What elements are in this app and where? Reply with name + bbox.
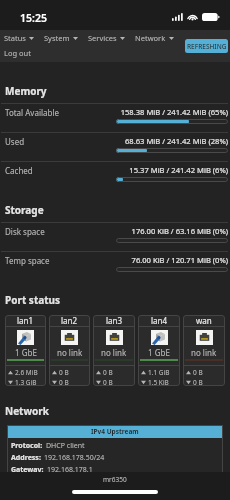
button[interactable]: System	[41, 31, 81, 45]
staticText: no link	[191, 347, 217, 358]
staticText: Network	[5, 404, 230, 418]
staticText: 0 B	[103, 378, 113, 386]
staticText: 1 GbE	[15, 347, 37, 358]
staticText: Temp space	[5, 255, 50, 266]
other: Ethernet port	[196, 330, 213, 345]
staticText: Log out	[4, 48, 31, 58]
staticText: 76.00 KiB / 120.71 MiB (0%)	[116, 255, 228, 265]
button[interactable]: Status	[1, 31, 37, 45]
staticText: Network	[135, 33, 166, 43]
button[interactable]: IPv4 Upstream	[7, 425, 223, 438]
staticText: IPv4 Upstream	[91, 427, 139, 436]
staticText: lan1	[17, 315, 34, 326]
staticText: Storage	[5, 203, 230, 217]
staticText: 1.5 KiB	[148, 378, 169, 386]
other: Ethernet port	[151, 330, 168, 345]
button[interactable]: Temp space	[0, 252, 230, 280]
staticText: wan	[196, 315, 212, 326]
staticText: 192.168.178.1	[47, 465, 93, 475]
staticText: 158.38 MiB / 241.42 MiB (65%)	[116, 107, 228, 117]
button[interactable]: Disk space	[0, 223, 230, 251]
staticText: 192.168.178.50/24	[44, 453, 105, 463]
staticText: 0 B	[59, 378, 69, 386]
button[interactable]: lan2	[49, 315, 90, 386]
staticText: Disk space	[5, 226, 45, 237]
button[interactable]: Network	[132, 31, 177, 45]
staticText: Memory	[5, 84, 230, 98]
staticText: DHCP client	[46, 441, 85, 451]
button[interactable]: REFRESHING	[185, 39, 228, 53]
staticText: 1.1 GiB	[148, 368, 170, 377]
staticText: 176.00 KiB / 63.16 MiB (0%)	[116, 226, 228, 236]
staticText: 1 GbE	[148, 347, 170, 358]
staticText: Protocol:	[11, 441, 43, 451]
button[interactable]: Total Available	[0, 104, 230, 132]
staticText: Status	[4, 33, 26, 43]
other: Ethernet port	[106, 330, 123, 345]
staticText: Port status	[5, 293, 230, 307]
button[interactable]: lan3	[93, 315, 135, 386]
staticText: lan3	[106, 315, 123, 326]
staticText: no link	[57, 347, 83, 358]
button[interactable]: Cached	[0, 162, 230, 190]
staticText: REFRESHING	[187, 42, 227, 51]
staticText: 15.37 MiB / 241.42 MiB (6%)	[116, 165, 228, 175]
staticText: Used	[5, 136, 25, 147]
staticText: lan4	[151, 315, 168, 326]
staticText: Gateway:	[11, 465, 44, 475]
button[interactable]: Used	[0, 133, 230, 161]
staticText: Total Available	[5, 107, 60, 118]
staticText: 2.6 MiB	[15, 368, 38, 377]
button[interactable]: wan	[183, 315, 225, 386]
button[interactable]: Log out	[1, 47, 34, 59]
staticText: lan2	[61, 315, 78, 326]
staticText: 0 B	[103, 368, 113, 377]
other: Ethernet port	[61, 330, 78, 345]
staticText: 68.63 MiB / 241.42 MiB (28%)	[116, 136, 228, 146]
staticText: Address:	[11, 453, 41, 463]
staticText: 15:25	[20, 11, 47, 25]
staticText: 0 B	[59, 368, 69, 377]
button[interactable]: lan4	[138, 315, 180, 386]
staticText: 0 B	[193, 378, 203, 386]
staticText: Services	[88, 33, 117, 43]
staticText: no link	[101, 347, 127, 358]
staticText: mr6350	[103, 475, 127, 484]
staticText: Cached	[5, 165, 33, 176]
other: Ethernet port	[17, 330, 34, 345]
staticText: 0 B	[193, 368, 203, 377]
staticText: System	[44, 33, 70, 43]
staticText: 1.3 GiB	[15, 378, 37, 386]
button[interactable]: lan1	[5, 315, 46, 386]
button[interactable]: Services	[85, 31, 128, 45]
